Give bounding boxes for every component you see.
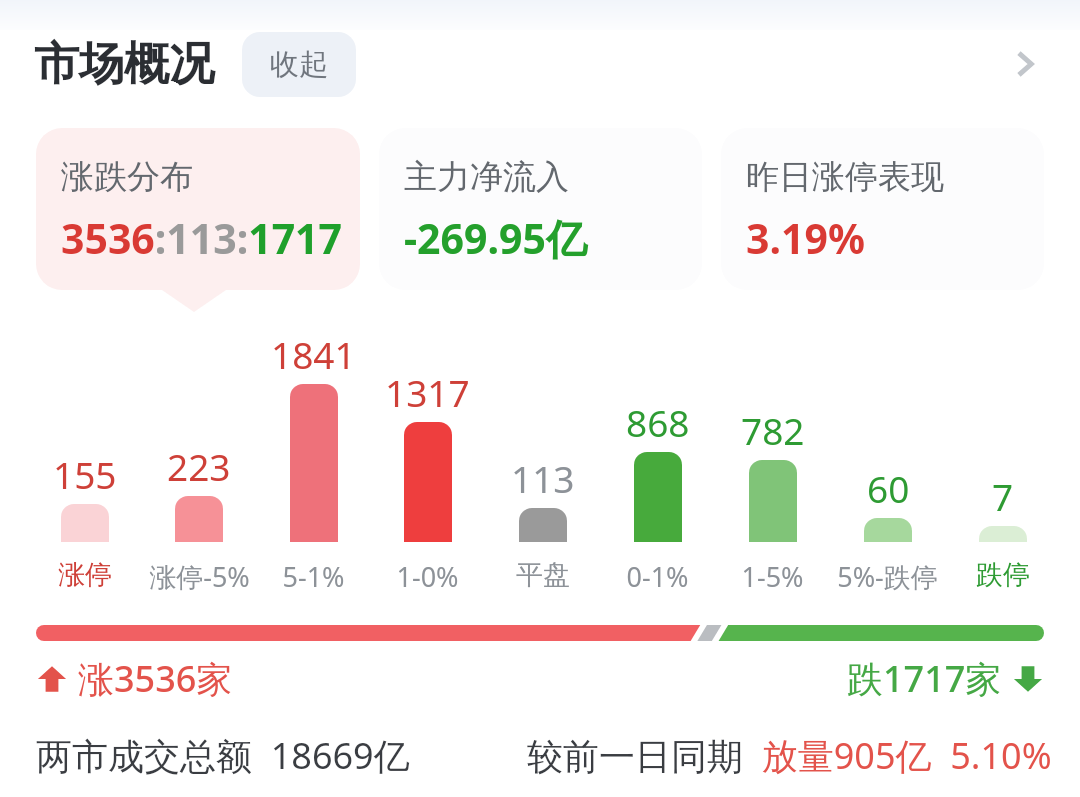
staticText: 主力净流入 [404, 156, 569, 198]
staticText: 平盘 [516, 558, 570, 592]
staticText: 223 [167, 441, 231, 491]
staticText: 跌停 [976, 558, 1030, 592]
staticText: 1-0% [396, 558, 459, 595]
staticText: 涨停-5% [149, 558, 250, 595]
staticText: 涨停 [58, 558, 112, 592]
button[interactable]: 主力净流入 [379, 128, 702, 290]
staticText: 3536:113:1717 [61, 210, 343, 266]
staticText: 868 [626, 397, 690, 447]
staticText: 市场概况 [34, 36, 214, 93]
staticText: 1317 [385, 367, 470, 417]
staticText: -269.95亿 [404, 210, 587, 266]
staticText: 涨3536家 [78, 654, 233, 703]
button[interactable]: 昨日涨停表现 [721, 128, 1044, 290]
staticText: 较前一日同期 放量905亿 5.10% [527, 731, 1052, 780]
staticText: 0-1% [626, 558, 689, 595]
staticText: 涨跌分布 [61, 156, 193, 198]
staticText: 155 [53, 449, 117, 499]
staticText: 1-5% [741, 558, 804, 595]
staticText: 5%-跌停 [837, 558, 938, 595]
staticText: 60 [867, 463, 910, 513]
staticText: 收起 [270, 46, 328, 83]
staticText: 7 [992, 471, 1014, 521]
button[interactable]: 涨跌分布 [36, 128, 360, 290]
staticText: 两市成交总额 18669亿 [36, 731, 410, 780]
staticText: 5-1% [282, 558, 345, 595]
staticText: 跌1717家 [847, 654, 1002, 703]
staticText: 昨日涨停表现 [746, 156, 944, 198]
staticText: 782 [741, 405, 805, 455]
staticText: 1841 [271, 329, 356, 379]
button[interactable]: 收起 [242, 32, 356, 97]
button[interactable]: Open market overview [994, 34, 1054, 94]
staticText: 113 [511, 453, 575, 503]
staticText: 3.19% [746, 210, 865, 266]
